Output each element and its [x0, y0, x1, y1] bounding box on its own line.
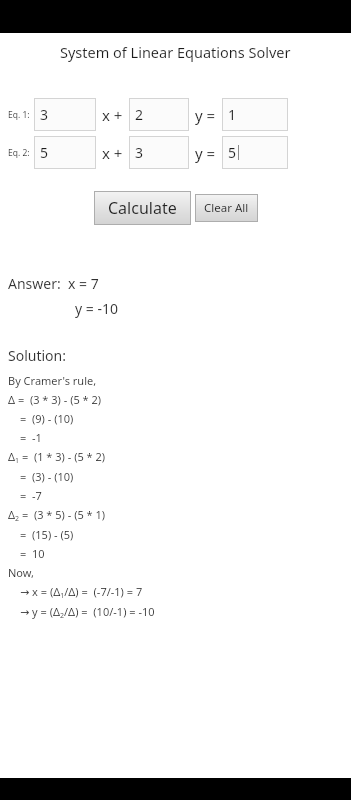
staticText: 2 [135, 105, 144, 124]
staticText: Δ = (3 * 3) - (5 * 2) [8, 392, 102, 407]
staticText: Solution: [8, 346, 66, 365]
staticText: 1 [228, 105, 237, 124]
staticText: x + [102, 143, 123, 163]
staticText: Eq. 2: [8, 147, 30, 159]
staticText: Δ2 = (3 * 5) - (5 * 1) [8, 507, 106, 523]
staticText: = 10 [20, 546, 45, 561]
staticText: 3 [40, 105, 49, 124]
button[interactable]: Coefficient 5 [34, 136, 96, 169]
staticText: x + [102, 105, 123, 125]
button[interactable]: Coefficient 1 [222, 98, 288, 131]
button[interactable]: Clear All [195, 194, 258, 222]
button[interactable]: Coefficient 3 [34, 98, 96, 131]
staticText: Δ1 = (1 * 3) - (5 * 2) [8, 449, 106, 465]
staticText: 5 [228, 143, 237, 162]
staticText: Eq. 1: [8, 109, 30, 121]
staticText: y = -10 [75, 299, 118, 318]
staticText: → y = (Δ2/Δ) = (10/-1) = -10 [20, 604, 155, 620]
staticText: Calculate [108, 197, 177, 219]
staticText: = (9) - (10) [20, 411, 74, 426]
staticText: y = [195, 143, 216, 163]
staticText: x = 7 [68, 274, 99, 293]
staticText: By Cramer's rule, [8, 373, 97, 388]
staticText: = -7 [20, 488, 42, 503]
button[interactable]: Coefficient 5 [222, 136, 288, 169]
staticText: System of Linear Equations Solver [60, 42, 291, 62]
button[interactable]: Coefficient 2 [129, 98, 189, 131]
staticText: = (15) - (5) [20, 527, 74, 542]
button[interactable]: Coefficient 3 [129, 136, 189, 169]
staticText: 3 [135, 143, 144, 162]
staticText: y = [195, 105, 216, 125]
staticText: = -1 [20, 430, 42, 445]
staticText: Answer: [8, 274, 61, 293]
staticText: → x = (Δ1/Δ) = (-7/-1) = 7 [20, 584, 143, 600]
staticText: Now, [8, 565, 34, 580]
staticText: Clear All [204, 200, 249, 216]
button[interactable]: Calculate [94, 191, 191, 225]
staticText: 5 [40, 143, 49, 162]
staticText: = (3) - (10) [20, 469, 74, 484]
